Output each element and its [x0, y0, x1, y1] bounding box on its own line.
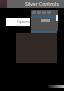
- staticText: Silver Controls: [25, 1, 59, 8]
- staticText: Options: [17, 19, 31, 24]
- button[interactable]: App icon: [0, 0, 7, 8]
- staticText: Advanced: [17, 24, 34, 27]
- button[interactable]: Options: [6, 18, 30, 26]
